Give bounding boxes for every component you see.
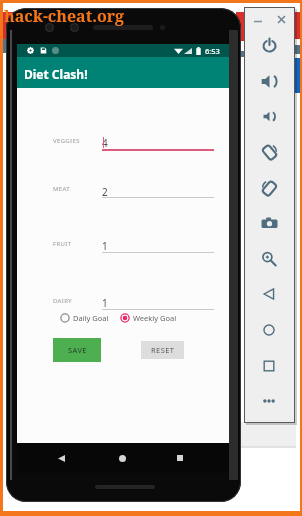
button[interactable]: Home bbox=[112, 448, 132, 468]
staticText: RESET bbox=[151, 345, 175, 355]
staticText: hack-cheat.org bbox=[4, 5, 125, 27]
button[interactable]: Rotate right bbox=[256, 175, 282, 201]
button[interactable]: Recent apps bbox=[170, 448, 190, 468]
button[interactable]: Rotate left bbox=[256, 139, 282, 165]
button[interactable]: Screenshot bbox=[256, 210, 282, 236]
staticText: 1 bbox=[102, 296, 108, 310]
button[interactable]: Home bbox=[256, 317, 282, 343]
staticText: 6:53 bbox=[205, 46, 220, 56]
button[interactable]: RESET bbox=[141, 341, 184, 359]
staticText: Daily Goal bbox=[73, 313, 109, 323]
staticText: FRUIT bbox=[53, 240, 72, 248]
button[interactable]: VEGGIES bbox=[53, 134, 215, 152]
button[interactable]: Daily Goal bbox=[60, 313, 109, 323]
button[interactable]: Volume up bbox=[256, 68, 282, 94]
staticText: 1 bbox=[102, 239, 108, 253]
staticText: MEAT bbox=[53, 185, 70, 193]
button[interactable]: Power bbox=[256, 32, 282, 58]
staticText: Weekly Goal bbox=[133, 313, 177, 323]
staticText: VEGGIES bbox=[53, 137, 80, 145]
staticText: 4 bbox=[102, 136, 108, 150]
button[interactable]: Back bbox=[256, 281, 282, 307]
staticText: SAVE bbox=[68, 345, 87, 355]
button[interactable]: FRUIT bbox=[53, 237, 215, 255]
button[interactable]: Weekly Goal bbox=[120, 313, 177, 323]
staticText: 2 bbox=[102, 185, 108, 199]
button[interactable]: Close bbox=[273, 11, 289, 27]
button[interactable]: MEAT bbox=[53, 182, 215, 200]
button[interactable]: SAVE bbox=[53, 338, 101, 362]
button[interactable]: Back bbox=[51, 448, 71, 468]
button[interactable]: DAIRY bbox=[53, 294, 215, 312]
button[interactable]: Volume down bbox=[256, 103, 282, 129]
staticText: DAIRY bbox=[53, 297, 73, 305]
button[interactable]: Minimize bbox=[250, 12, 266, 28]
button[interactable]: More bbox=[256, 388, 282, 414]
button[interactable]: Zoom bbox=[256, 246, 282, 272]
staticText: Diet Clash! bbox=[24, 66, 88, 82]
button[interactable]: Overview bbox=[256, 353, 282, 379]
